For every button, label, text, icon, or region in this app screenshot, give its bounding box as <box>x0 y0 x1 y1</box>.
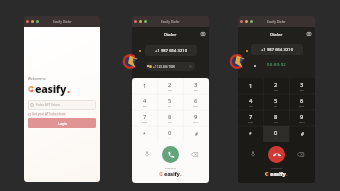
staticText: ABC <box>168 89 173 92</box>
staticText: 6 <box>300 97 304 105</box>
staticText: +1 987 654 3210 <box>261 47 294 52</box>
button[interactable]: 9 <box>289 110 315 126</box>
staticText: 2 <box>274 81 278 89</box>
button[interactable]: Login <box>28 118 96 128</box>
staticText: Powered by <box>165 167 176 170</box>
button[interactable]: 0 <box>263 126 289 142</box>
button[interactable]: 5 <box>157 94 183 110</box>
staticText: # <box>301 131 304 137</box>
staticText: Welcome to <box>28 77 46 81</box>
button[interactable]: 1 <box>238 78 263 94</box>
staticText: 00:00:02 <box>267 62 287 68</box>
staticText: 3 <box>194 81 198 89</box>
staticText: MNO <box>193 105 199 108</box>
staticText: 1 <box>249 82 253 90</box>
button[interactable]: Backspace <box>189 149 199 159</box>
staticText: + <box>169 137 171 140</box>
staticText: Login <box>58 121 67 125</box>
button[interactable]: +1 987 654 3210 <box>251 44 303 55</box>
staticText: Easify Dialer <box>161 20 180 24</box>
button[interactable]: 4 <box>238 94 263 110</box>
staticText: 4 <box>249 97 253 105</box>
button[interactable]: 8 <box>157 110 183 126</box>
button[interactable]: End call <box>268 146 285 163</box>
staticText: # <box>195 131 198 137</box>
staticText: 5 <box>168 97 172 105</box>
staticText: 8 <box>168 113 172 121</box>
button[interactable]: 3 <box>289 78 315 94</box>
staticText: + <box>275 137 277 140</box>
button[interactable]: 3 <box>183 78 209 94</box>
staticText: . <box>286 170 288 178</box>
staticText: Get your API token here <box>32 112 66 116</box>
staticText: 9 <box>300 113 304 121</box>
staticText: MNO <box>299 105 305 108</box>
button[interactable]: 7 <box>132 110 157 126</box>
staticText: GHI <box>143 105 147 108</box>
staticText: 6 <box>194 97 198 105</box>
button[interactable]: Mute microphone <box>248 149 258 159</box>
button[interactable]: # <box>289 126 315 142</box>
staticText: easify <box>35 82 67 96</box>
staticText: JKL <box>168 105 172 108</box>
staticText: 9 <box>194 113 198 121</box>
staticText: . <box>67 82 71 96</box>
button[interactable]: Contacts <box>200 31 206 37</box>
staticText: easify <box>164 170 180 178</box>
staticText: 0 <box>274 129 278 137</box>
staticText: WXYZ <box>299 121 305 124</box>
staticText: GHI <box>249 105 253 108</box>
staticText: DEF <box>194 89 198 92</box>
staticText: Easify Dialer <box>267 20 286 24</box>
staticText: Enter API Token <box>36 103 60 107</box>
staticText: ABC <box>274 89 279 92</box>
button[interactable]: Enter API Token <box>28 100 96 110</box>
staticText: easify <box>270 170 286 178</box>
staticText: * <box>143 131 146 137</box>
staticText: Easify Dialer <box>53 20 72 24</box>
button[interactable]: +1 123 456 7890 <box>146 62 195 71</box>
button[interactable]: 2 <box>157 78 183 94</box>
button[interactable]: 4 <box>132 94 157 110</box>
button[interactable]: 6 <box>183 94 209 110</box>
button[interactable]: 6 <box>289 94 315 110</box>
staticText: 5 <box>274 97 278 105</box>
staticText: +1 123 456 7890 <box>153 65 176 69</box>
button[interactable]: 1 <box>132 78 157 94</box>
staticText: Dialer <box>164 31 177 37</box>
button[interactable]: 0 <box>157 126 183 142</box>
button[interactable]: 2 <box>263 78 289 94</box>
staticText: Dialer <box>270 31 283 37</box>
staticText: . <box>180 170 182 178</box>
button[interactable]: * <box>238 126 263 142</box>
button[interactable]: +1 987 654 3210 <box>145 45 197 56</box>
staticText: WXYZ <box>193 121 199 124</box>
staticText: 4 <box>143 97 147 105</box>
button[interactable]: Contacts <box>306 31 312 37</box>
staticText: 7 <box>249 113 253 121</box>
staticText: Powered by <box>271 167 282 170</box>
staticText: TUV <box>168 121 173 124</box>
button[interactable]: Mute microphone <box>142 149 152 159</box>
button[interactable]: 8 <box>263 110 289 126</box>
button[interactable]: Backspace <box>295 149 305 159</box>
staticText: * <box>249 131 252 137</box>
button[interactable]: Get your API token here <box>28 112 66 116</box>
staticText: TUV <box>274 121 279 124</box>
staticText: 8 <box>274 113 278 121</box>
button[interactable]: 7 <box>238 110 263 126</box>
staticText: JKL <box>274 105 278 108</box>
button[interactable]: # <box>183 126 209 142</box>
staticText: PQRS <box>142 121 148 124</box>
button[interactable]: 5 <box>263 94 289 110</box>
staticText: PQRS <box>248 121 254 124</box>
staticText: 7 <box>143 113 147 121</box>
button[interactable]: 9 <box>183 110 209 126</box>
button[interactable]: * <box>132 126 157 142</box>
staticText: DEF <box>300 89 304 92</box>
staticText: 0 <box>168 129 172 137</box>
staticText: 1 <box>143 82 147 90</box>
staticText: 3 <box>300 81 304 89</box>
staticText: +1 987 654 3210 <box>155 48 188 53</box>
button[interactable]: Call <box>162 146 179 163</box>
